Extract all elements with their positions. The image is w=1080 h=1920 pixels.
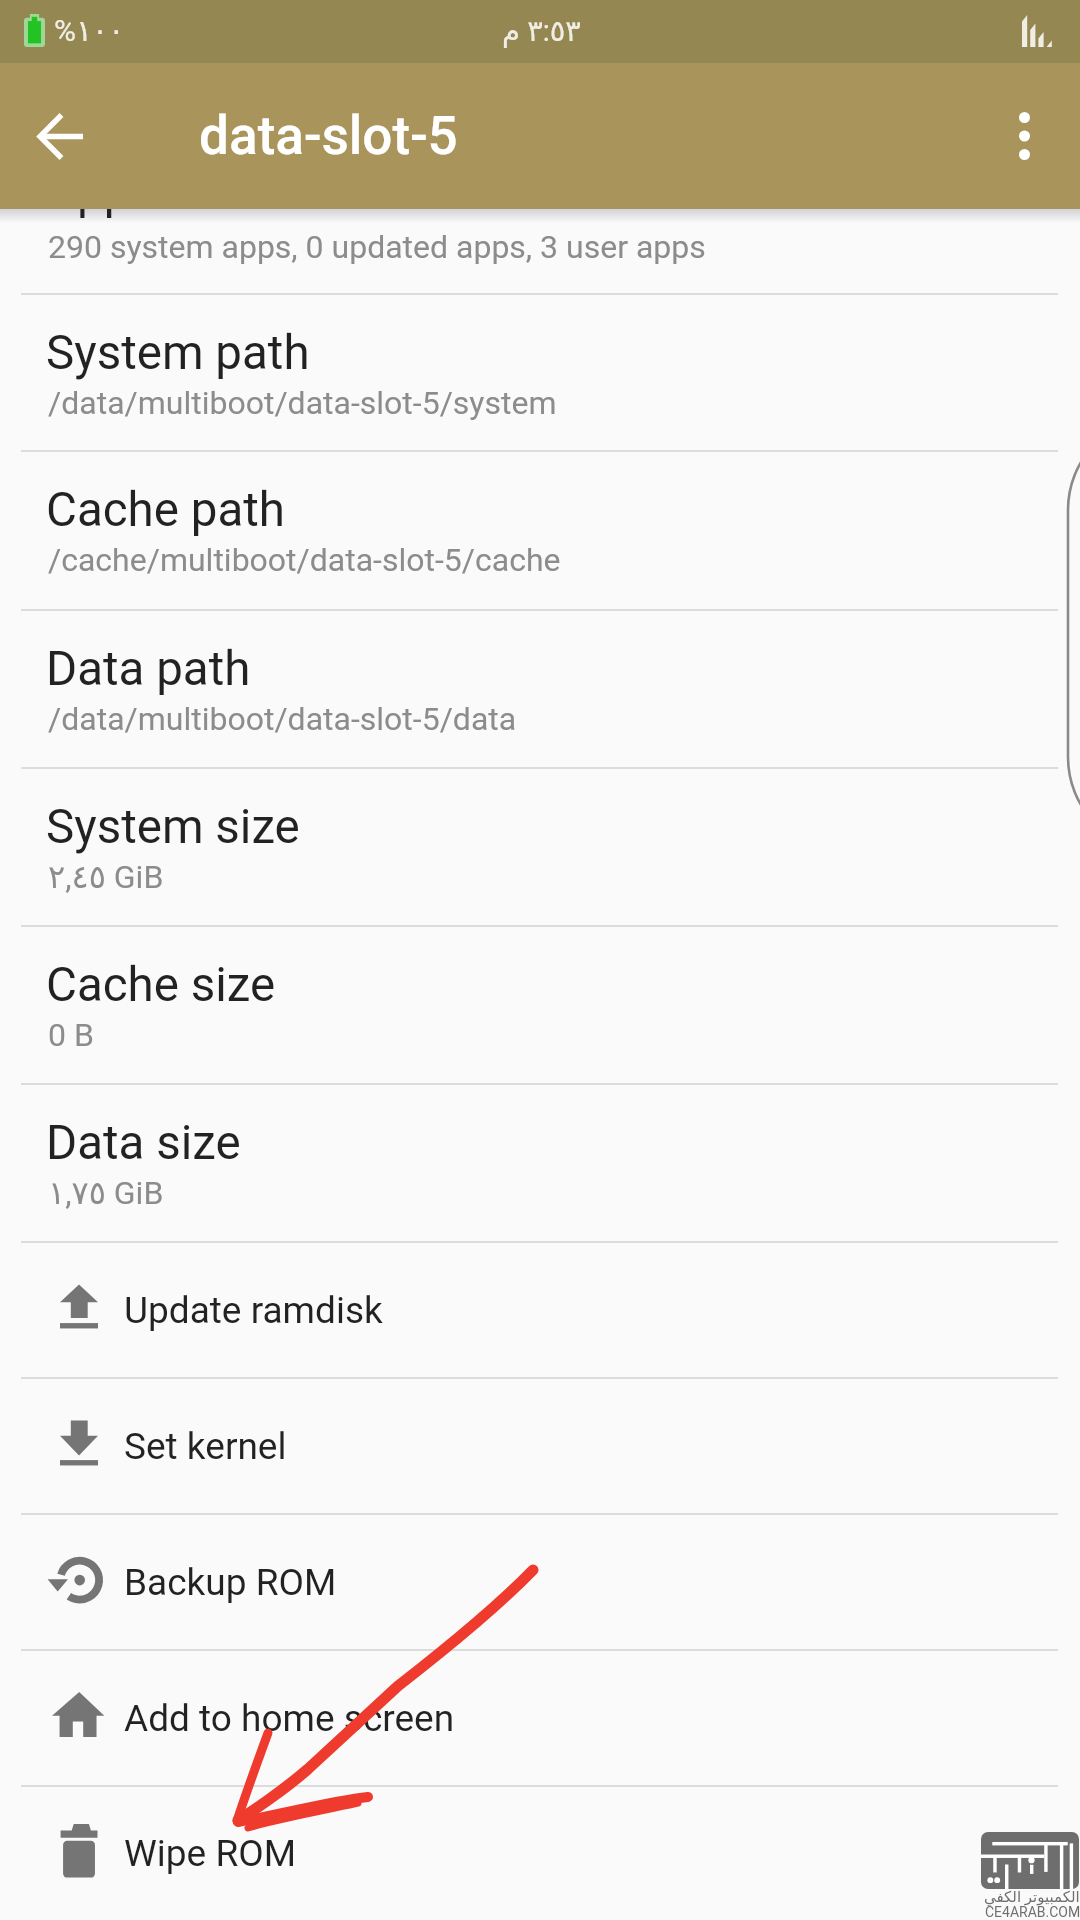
staticText: Wipe ROM [124, 1832, 296, 1875]
staticText: 0 B [48, 1016, 94, 1054]
staticText: /data/multiboot/data-slot-5/data [48, 700, 517, 738]
staticText: /data/multiboot/data-slot-5/system [48, 384, 557, 422]
staticText: %١٠٠ [54, 13, 125, 48]
button[interactable]: System size [0, 769, 1080, 925]
staticText: Backup ROM [124, 1561, 337, 1604]
button[interactable]: Backup ROM [0, 1515, 1080, 1649]
staticText: Apps [46, 164, 155, 220]
staticText: ٢,٤٥ GiB [48, 858, 164, 896]
staticText: Add to home screen [124, 1697, 455, 1740]
staticText: 290 system apps, 0 updated apps, 3 user … [48, 228, 706, 266]
staticText: الكمبيوتر الكفي [984, 1888, 1080, 1906]
staticText: System size [46, 799, 300, 855]
button[interactable]: System path [0, 295, 1080, 450]
staticText: /cache/multiboot/data-slot-5/cache [48, 541, 561, 579]
staticText: Data size [46, 1115, 241, 1171]
staticText: Data path [46, 641, 251, 697]
staticText: CE4ARAB.COM [985, 1904, 1080, 1920]
staticText: Set kernel [124, 1425, 287, 1468]
staticText: Cache size [46, 957, 276, 1013]
staticText: ١,٧٥ GiB [48, 1174, 164, 1212]
button[interactable]: Data path [0, 611, 1080, 767]
button[interactable]: Wipe ROM [0, 1787, 1080, 1920]
button[interactable]: Cache path [0, 452, 1080, 609]
button[interactable]: More options [968, 80, 1080, 192]
staticText: ٣:٥٣ م [502, 14, 581, 48]
button[interactable]: Data size [0, 1085, 1080, 1241]
button[interactable]: Cache size [0, 927, 1080, 1083]
button[interactable]: Back [18, 93, 104, 179]
staticText: data-slot-5 [199, 105, 458, 167]
button[interactable]: Update ramdisk [0, 1243, 1080, 1377]
button[interactable]: Set kernel [0, 1379, 1080, 1513]
staticText: Update ramdisk [124, 1289, 383, 1332]
button[interactable]: Add to home screen [0, 1651, 1080, 1785]
staticText: Cache path [46, 482, 285, 538]
staticText: System path [46, 325, 310, 381]
